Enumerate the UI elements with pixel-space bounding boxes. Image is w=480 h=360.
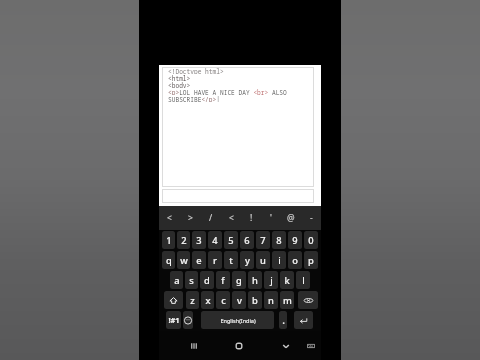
button[interactable]: j xyxy=(264,271,278,289)
button[interactable]: 7 xyxy=(256,231,270,249)
staticText: n xyxy=(268,294,274,307)
button[interactable]: Backspace xyxy=(298,291,318,309)
staticText: ' xyxy=(270,212,272,224)
staticText: i xyxy=(278,254,281,267)
button[interactable]: 1 xyxy=(162,231,175,249)
staticText: e xyxy=(196,254,202,267)
staticText: - xyxy=(310,212,313,224)
button[interactable]: v xyxy=(232,291,246,309)
staticText: m xyxy=(283,294,292,307)
button[interactable]: . xyxy=(279,311,287,329)
staticText: w xyxy=(180,254,188,267)
button[interactable]: t xyxy=(224,251,238,269)
staticText: t xyxy=(229,254,233,267)
button[interactable]: ' xyxy=(261,206,281,230)
staticText: @ xyxy=(287,212,295,224)
button[interactable]: d xyxy=(200,271,214,289)
staticText: k xyxy=(284,274,290,287)
button[interactable]: < xyxy=(159,206,180,230)
button[interactable]: 3 xyxy=(192,231,206,249)
staticText: a xyxy=(174,274,180,287)
staticText: 6 xyxy=(244,234,250,247)
button[interactable]: 2 xyxy=(177,231,190,249)
staticText: r xyxy=(213,254,217,267)
button[interactable]: w xyxy=(177,251,190,269)
button[interactable]: 8 xyxy=(272,231,286,249)
button[interactable]: y xyxy=(240,251,254,269)
button[interactable]: @ xyxy=(281,206,301,230)
staticText: 0 xyxy=(308,234,314,247)
staticText: d xyxy=(204,274,210,287)
button[interactable]: Keyboard layout xyxy=(300,335,321,357)
button[interactable]: Shift xyxy=(164,291,183,309)
staticText: <body> xyxy=(168,81,191,88)
staticText: ! xyxy=(250,212,253,224)
button[interactable]: z xyxy=(186,291,199,309)
button[interactable]: Emoji xyxy=(183,311,193,329)
button[interactable]: i xyxy=(272,251,286,269)
staticText: c xyxy=(221,294,226,307)
button[interactable]: m xyxy=(280,291,294,309)
staticText: 5 xyxy=(228,234,234,247)
staticText: 9 xyxy=(292,234,298,247)
staticText: <p>LOL HAVE A NICE DAY <br> ALSO xyxy=(168,88,287,95)
button[interactable]: g xyxy=(232,271,246,289)
staticText: b xyxy=(252,294,258,307)
staticText: SUBSCRIBE</p>| xyxy=(168,95,220,102)
button[interactable]: x xyxy=(201,291,214,309)
button[interactable]: k xyxy=(280,271,294,289)
button[interactable]: < xyxy=(221,206,241,230)
button[interactable]: - xyxy=(301,206,321,230)
staticText: <!Doctype html> xyxy=(168,67,224,74)
staticText: l xyxy=(302,274,305,287)
staticText: English(India) xyxy=(220,317,256,324)
staticText: < xyxy=(167,212,172,224)
button[interactable]: q xyxy=(162,251,175,269)
button[interactable]: e xyxy=(192,251,206,269)
staticText: g xyxy=(236,274,242,287)
button[interactable]: c xyxy=(216,291,230,309)
button[interactable]: u xyxy=(256,251,270,269)
staticText: / xyxy=(209,212,213,224)
button[interactable]: b xyxy=(248,291,262,309)
staticText: h xyxy=(252,274,258,287)
button[interactable]: a xyxy=(170,271,183,289)
staticText: <html> xyxy=(168,74,191,81)
button[interactable]: Enter xyxy=(294,311,313,329)
button[interactable]: Home xyxy=(228,335,250,357)
button[interactable]: h xyxy=(248,271,262,289)
button[interactable]: 9 xyxy=(288,231,302,249)
staticText: y xyxy=(245,254,250,267)
button[interactable]: p xyxy=(304,251,318,269)
button[interactable]: n xyxy=(264,291,278,309)
button[interactable]: Recents xyxy=(183,335,205,357)
button[interactable]: f xyxy=(216,271,230,289)
staticText: v xyxy=(237,294,242,307)
button[interactable]: English(India) xyxy=(201,311,274,329)
button[interactable]: l xyxy=(296,271,310,289)
button[interactable]: Hide keyboard xyxy=(275,335,297,357)
button[interactable]: s xyxy=(185,271,198,289)
staticText: u xyxy=(260,254,266,267)
button[interactable]: / xyxy=(201,206,221,230)
button[interactable]: !#1 xyxy=(166,311,181,329)
staticText: 7 xyxy=(260,234,266,247)
button[interactable]: ! xyxy=(241,206,261,230)
staticText: 4 xyxy=(212,234,218,247)
button[interactable]: 6 xyxy=(240,231,254,249)
staticText: z xyxy=(190,294,195,307)
staticText: < xyxy=(229,212,234,224)
button[interactable]: 0 xyxy=(304,231,318,249)
staticText: x xyxy=(205,294,211,307)
staticText: j xyxy=(270,274,273,287)
staticText: o xyxy=(292,254,298,267)
button[interactable]: r xyxy=(208,251,222,269)
button[interactable]: o xyxy=(288,251,302,269)
staticText: 1 xyxy=(166,234,172,247)
staticText: 3 xyxy=(196,234,202,247)
staticText: . xyxy=(282,313,285,327)
button[interactable]: 5 xyxy=(224,231,238,249)
staticText: 2 xyxy=(181,234,187,247)
button[interactable]: > xyxy=(180,206,201,230)
button[interactable]: 4 xyxy=(208,231,222,249)
